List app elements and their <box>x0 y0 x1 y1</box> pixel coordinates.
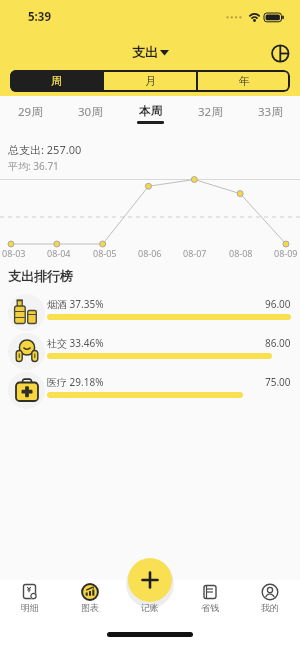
button[interactable]: 支出 <box>132 44 169 60</box>
staticText: 图表 <box>81 602 99 613</box>
button[interactable]: 医疗 29.18% <box>8 371 291 410</box>
staticText: 支出排行榜 <box>8 268 73 284</box>
button[interactable]: 省钱 <box>180 583 240 649</box>
staticText: 医疗 29.18% <box>47 375 104 389</box>
staticText: 本周 <box>139 104 162 118</box>
button[interactable]: 周 <box>10 70 102 92</box>
staticText: 总支出: 257.00 <box>8 142 82 157</box>
button[interactable] <box>128 558 172 602</box>
button[interactable]: 我的 <box>240 583 300 649</box>
staticText: 08-07 <box>183 247 207 259</box>
button[interactable]: 本周 <box>120 96 180 132</box>
staticText: 08-06 <box>138 247 162 259</box>
button[interactable]: 记账 <box>120 583 180 649</box>
button[interactable]: 29周 <box>0 96 60 132</box>
button[interactable]: 32周 <box>180 96 240 132</box>
staticText: 29周 <box>18 104 43 120</box>
button[interactable]: 月 <box>104 70 196 92</box>
staticText: 75.00 <box>265 375 291 389</box>
staticText: 年 <box>239 74 250 88</box>
button[interactable]: 图表 <box>60 583 120 649</box>
staticText: 周 <box>51 74 62 88</box>
staticText: 08-04 <box>47 247 71 259</box>
button[interactable]: 30周 <box>60 96 120 132</box>
button[interactable]: 烟酒 37.35% <box>8 293 291 332</box>
staticText: 86.00 <box>265 336 291 350</box>
button[interactable]: 33周 <box>240 96 300 132</box>
staticText: 08-08 <box>229 247 253 259</box>
staticText: 我的 <box>261 602 279 613</box>
staticText: 96.00 <box>265 297 291 311</box>
staticText: 08-03 <box>2 247 26 259</box>
button[interactable]: 明细 <box>0 583 60 649</box>
staticText: 33周 <box>258 104 283 120</box>
staticText: 月 <box>145 74 156 88</box>
button[interactable]: 年 <box>198 70 290 92</box>
staticText: 明细 <box>21 602 39 613</box>
staticText: 08-09 <box>274 247 298 259</box>
staticText: 记账 <box>141 602 159 613</box>
staticText: 5:39 <box>28 9 51 25</box>
button[interactable]: 社交 33.46% <box>8 332 291 371</box>
staticText: 32周 <box>198 104 223 120</box>
staticText: 省钱 <box>201 602 219 613</box>
staticText: 烟酒 37.35% <box>47 297 104 311</box>
staticText: 30周 <box>78 104 103 120</box>
staticText: 平均: 36.71 <box>8 159 59 173</box>
staticText: 支出 <box>132 44 158 60</box>
staticText: 08-05 <box>93 247 117 259</box>
staticText: 社交 33.46% <box>47 336 104 350</box>
